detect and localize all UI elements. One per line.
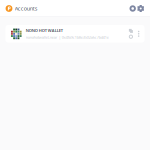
button[interactable]: Accounts [6, 0, 38, 17]
staticText: nonohotwallet.near | 0x4fa9c1b8e3502a6c7… [26, 35, 109, 40]
button[interactable]: Settings [137, 0, 145, 16]
button[interactable]: NONO HOT WALLET [5, 25, 144, 43]
staticText: NONO HOT WALLET [26, 28, 63, 33]
button[interactable]: More options [133, 31, 144, 37]
button[interactable]: Transaction history [129, 35, 133, 39]
button[interactable]: Network [129, 0, 137, 16]
button[interactable]: Copy address [129, 29, 133, 33]
staticText: Accounts [15, 5, 38, 12]
